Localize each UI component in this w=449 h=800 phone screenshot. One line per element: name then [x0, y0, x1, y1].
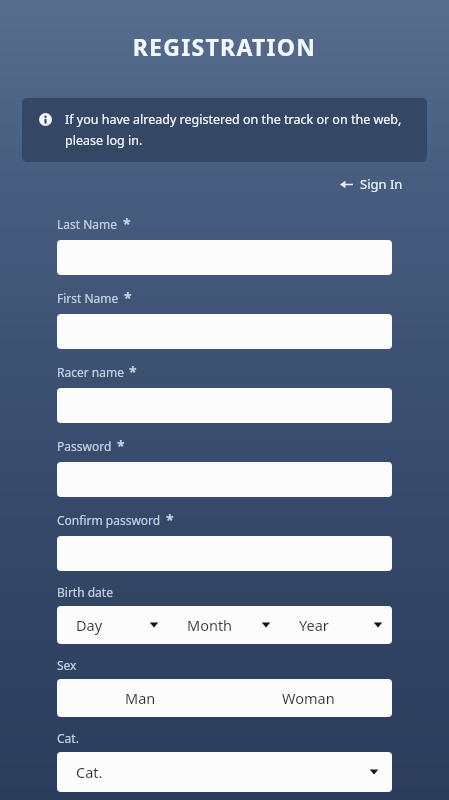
- other: Information: [39, 113, 52, 126]
- staticText: Woman: [282, 688, 335, 708]
- button[interactable]: Month: [168, 606, 280, 644]
- staticText: *: [123, 214, 131, 233]
- staticText: *: [166, 510, 174, 529]
- staticText: Birth date: [57, 584, 113, 600]
- other: Select Year: [373, 620, 383, 630]
- staticText: Racer name: [57, 364, 124, 380]
- staticText: Last Name: [57, 216, 118, 232]
- staticText: Cat.: [76, 762, 103, 782]
- button[interactable]: Woman: [224, 679, 392, 717]
- staticText: *: [124, 288, 132, 307]
- button[interactable]: [57, 388, 392, 423]
- staticText: Day: [76, 615, 103, 635]
- staticText: Year: [299, 615, 329, 635]
- button[interactable]: Information: [22, 98, 427, 162]
- button[interactable]: [57, 536, 392, 571]
- staticText: Man: [125, 688, 156, 708]
- button[interactable]: Day: [57, 606, 168, 644]
- staticText: Confirm password: [57, 512, 161, 528]
- staticText: *: [129, 362, 137, 381]
- staticText: Month: [187, 615, 233, 635]
- other: Select category: [369, 767, 379, 777]
- button[interactable]: [57, 240, 392, 275]
- staticText: Sign In: [360, 175, 403, 193]
- other: Select Day: [149, 620, 159, 630]
- staticText: First Name: [57, 290, 119, 306]
- button[interactable]: Man: [57, 679, 224, 717]
- button[interactable]: Cat.: [57, 752, 392, 792]
- button[interactable]: Year: [280, 606, 392, 644]
- staticText: Password: [57, 438, 112, 454]
- other: Select Month: [261, 620, 271, 630]
- staticText: Cat.: [57, 730, 79, 746]
- button[interactable]: Sign In: [336, 171, 407, 197]
- staticText: REGISTRATION: [0, 31, 449, 62]
- staticText: *: [117, 436, 125, 455]
- button[interactable]: [57, 314, 392, 349]
- staticText: If you have already registered on the tr…: [65, 111, 413, 148]
- staticText: Sex: [57, 657, 77, 673]
- button[interactable]: [57, 462, 392, 497]
